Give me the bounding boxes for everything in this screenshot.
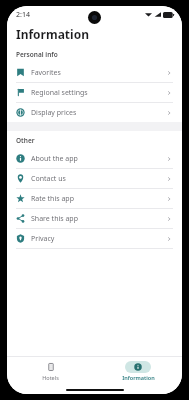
button[interactable]: Contact us [7, 169, 182, 188]
staticText: Contact us [31, 174, 166, 184]
staticText: Share this app [31, 214, 166, 224]
staticText: Information [122, 374, 155, 381]
staticText: 2:14 [16, 10, 30, 20]
staticText: Display prices [31, 108, 166, 118]
staticText: About the app [31, 154, 166, 164]
staticText: Rate this app [31, 194, 166, 204]
staticText: Personal info [16, 50, 58, 59]
staticText: Privacy [31, 234, 166, 244]
button[interactable]: Regional settings [7, 83, 182, 102]
staticText: Other [16, 136, 35, 145]
button[interactable]: Hotels [7, 361, 94, 381]
button[interactable]: Rate this app [7, 189, 182, 208]
button[interactable]: Information [94, 361, 182, 381]
staticText: Regional settings [31, 88, 166, 98]
staticText: Favorites [31, 68, 166, 78]
button[interactable]: Favorites [7, 63, 182, 82]
button[interactable]: About the app [7, 149, 182, 168]
staticText: Hotels [42, 374, 59, 381]
button[interactable]: Privacy [7, 229, 182, 248]
staticText: Information [16, 26, 89, 42]
button[interactable]: Display prices [7, 103, 182, 122]
button[interactable]: Share this app [7, 209, 182, 228]
